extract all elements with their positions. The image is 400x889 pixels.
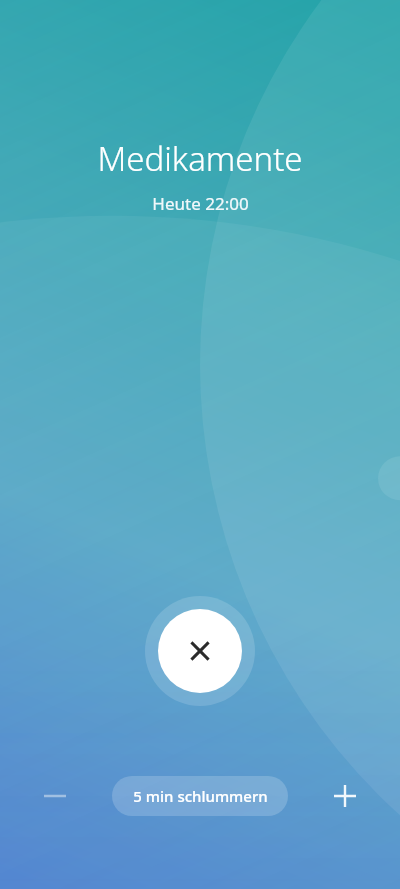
- button[interactable]: Schlummerzeit verringern: [31, 772, 79, 820]
- button[interactable]: 5 min schlummern: [112, 776, 288, 816]
- staticText: Medikamente: [97, 136, 303, 181]
- button[interactable]: Schlummerzeit erhöhen: [321, 772, 369, 820]
- staticText: 5 min schlummern: [133, 786, 268, 806]
- button[interactable]: Alarm schließen: [145, 596, 255, 706]
- staticText: Heute 22:00: [152, 192, 249, 215]
